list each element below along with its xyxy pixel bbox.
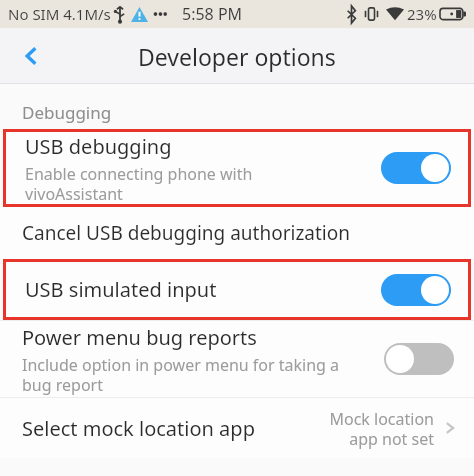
button[interactable]: USB debugging <box>3 129 471 207</box>
button[interactable]: Toggle off <box>384 343 454 375</box>
button[interactable]: Cancel USB debugging authorization <box>0 207 474 259</box>
button[interactable]: Back <box>10 34 54 78</box>
staticText: No SIM 4.1M/s <box>8 4 111 24</box>
button[interactable]: USB simulated input <box>3 259 471 320</box>
staticText: USB simulated input <box>25 276 217 303</box>
staticText: Select mock location app <box>22 415 255 442</box>
staticText: Debugging <box>22 101 112 124</box>
staticText: 5:58 PM <box>182 3 243 25</box>
button[interactable]: Toggle on <box>381 274 451 306</box>
staticText: USB debugging <box>25 133 172 160</box>
button[interactable]: Power menu bug reports <box>0 321 474 397</box>
staticText: Include option in power menu for taking … <box>22 354 340 395</box>
staticText: Cancel USB debugging authorization <box>22 220 350 246</box>
staticText: ••• <box>153 5 168 23</box>
button[interactable]: Select mock location app <box>0 398 474 458</box>
staticText: Developer options <box>138 41 336 72</box>
staticText: 23% <box>407 4 437 24</box>
staticText: Mock location app not set <box>329 408 434 449</box>
staticText: Enable connecting phone with vivoAssista… <box>25 163 253 204</box>
staticText: Power menu bug reports <box>22 324 257 351</box>
button[interactable]: Toggle on <box>381 152 451 184</box>
